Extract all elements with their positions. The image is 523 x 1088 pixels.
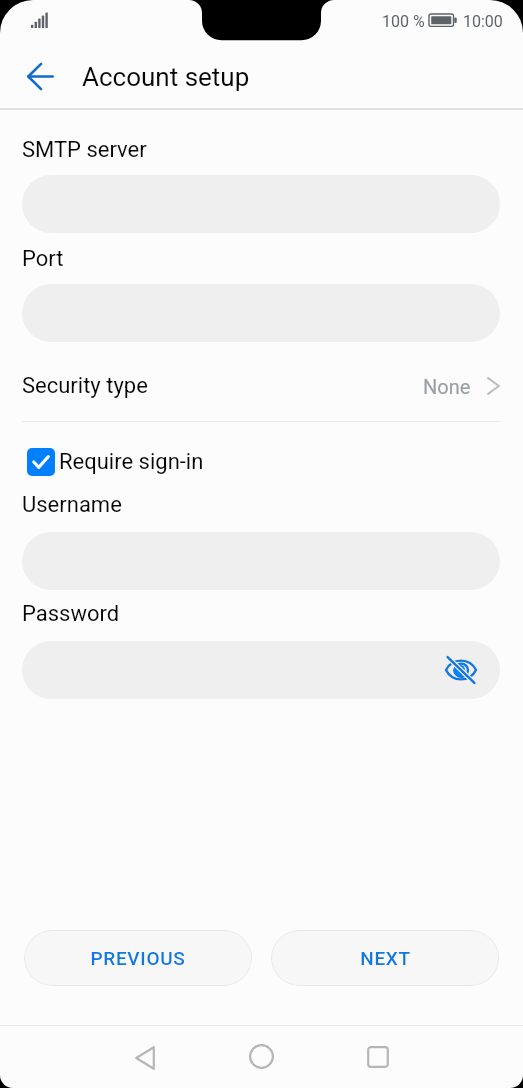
- staticText: Password: [22, 601, 120, 627]
- staticText: None: [423, 375, 471, 398]
- staticText: SMTP server: [22, 137, 147, 163]
- button[interactable]: Home: [237, 1032, 285, 1080]
- staticText: NEXT: [360, 947, 411, 969]
- button[interactable]: Show password: [442, 651, 480, 689]
- staticText: 10:00: [463, 12, 503, 31]
- staticText: 100 %: [382, 12, 425, 31]
- button[interactable]: Back: [16, 52, 64, 100]
- button[interactable]: Recents: [354, 1033, 402, 1081]
- button[interactable]: Show password: [22, 641, 500, 699]
- button[interactable]: Back: [121, 1034, 169, 1082]
- staticText: Account setup: [82, 62, 250, 92]
- staticText: Username: [22, 492, 122, 518]
- button[interactable]: Security type: [0, 362, 523, 410]
- button[interactable]: NEXT: [271, 930, 499, 986]
- button[interactable]: Require sign-in: [0, 439, 523, 485]
- staticText: Require sign-in: [59, 449, 204, 475]
- button[interactable]: PREVIOUS: [24, 930, 252, 986]
- staticText: PREVIOUS: [90, 947, 186, 969]
- staticText: Port: [22, 246, 64, 272]
- staticText: Security type: [22, 373, 148, 399]
